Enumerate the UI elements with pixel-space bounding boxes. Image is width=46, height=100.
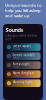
- staticText: Unique sounds to help you fall asleep an…: [5, 2, 41, 18]
- staticText: Soft drizzle: [13, 57, 20, 59]
- staticText: Sounds: [5, 26, 23, 33]
- staticText: Forest night: [13, 62, 30, 66]
- button[interactable]: Ocean waves: [5, 43, 41, 51]
- button[interactable]: Morning light: [5, 79, 41, 87]
- staticText: Crackling: [13, 75, 20, 77]
- staticText: Ocean waves: [13, 44, 31, 48]
- button[interactable]: Warm fireplace: [5, 70, 41, 78]
- staticText: Crickets: [13, 66, 19, 68]
- staticText: Birdsong: [13, 84, 20, 86]
- staticText: Warm fireplace: [13, 71, 35, 75]
- staticText: Deep calm: [13, 48, 20, 50]
- staticText: Calm your mind before bed: [5, 34, 37, 41]
- button[interactable]: Gentle rainfall: [5, 52, 41, 60]
- button[interactable]: Forest night: [5, 61, 41, 69]
- staticText: Morning light: [13, 80, 33, 84]
- staticText: Gentle rainfall: [13, 53, 35, 57]
